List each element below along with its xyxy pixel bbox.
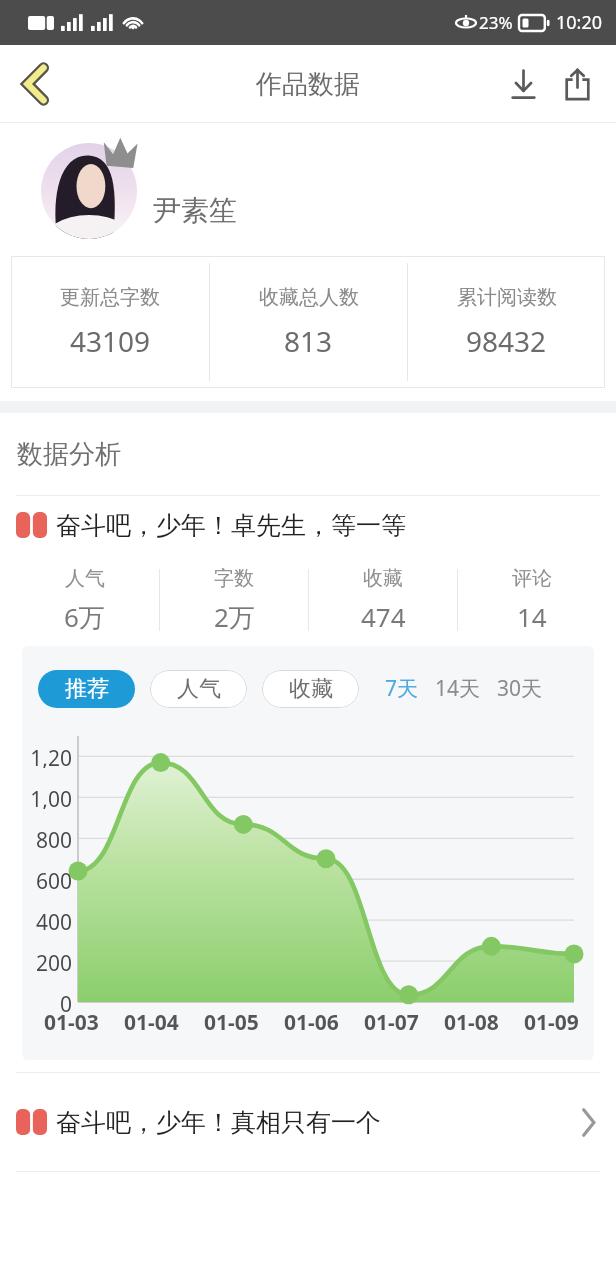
staticText: 数据分析 — [17, 438, 121, 471]
staticText: 01-09 — [524, 1008, 579, 1037]
staticText: 尹素笙 — [153, 193, 237, 228]
staticText: 1,200 — [22, 744, 72, 768]
staticText: 01-07 — [364, 1008, 419, 1037]
staticText: 作品数据 — [256, 68, 360, 101]
button[interactable]: 7天 — [381, 666, 423, 711]
staticText: 收藏 — [363, 566, 403, 591]
staticText: 813 — [284, 322, 333, 360]
staticText: 更新总字数 — [60, 285, 160, 310]
button[interactable]: 收藏总人数 — [210, 256, 407, 388]
button[interactable]: 人气 — [10, 566, 159, 635]
button[interactable]: 更新总字数 — [11, 256, 209, 388]
staticText: 23% — [479, 11, 513, 34]
staticText: 10:20 — [556, 10, 603, 35]
staticText: 7天 — [385, 674, 419, 703]
staticText: 人气 — [65, 566, 105, 591]
button[interactable]: 评论 — [458, 566, 606, 634]
staticText: 1,000 — [22, 785, 72, 809]
staticText: 累计阅读数 — [457, 285, 557, 310]
staticText: 200 — [35, 949, 72, 973]
staticText: 600 — [35, 867, 72, 891]
button[interactable]: Back — [0, 45, 70, 123]
staticText: 01-05 — [204, 1008, 259, 1037]
staticText: 800 — [35, 826, 72, 850]
staticText: 奋斗吧，少年！真相只有一个 — [56, 1107, 381, 1138]
staticText: 评论 — [512, 566, 552, 591]
staticText: 字数 — [214, 566, 254, 591]
button[interactable]: 收藏 — [262, 670, 359, 708]
button[interactable]: 累计阅读数 — [408, 256, 605, 388]
staticText: 6万 — [64, 599, 105, 635]
staticText: 奋斗吧，少年！卓先生，等一等 — [56, 510, 406, 541]
staticText: 14天 — [435, 674, 481, 703]
button[interactable]: 30天 — [493, 666, 547, 711]
button[interactable]: 奋斗吧，少年！真相只有一个 — [0, 1073, 616, 1171]
staticText: 2万 — [214, 599, 255, 635]
button[interactable]: 收藏 — [309, 566, 457, 634]
button[interactable]: 14天 — [431, 666, 485, 711]
button[interactable]: 奋斗吧，少年！卓先生，等一等 — [0, 496, 616, 554]
staticText: 01-03 — [44, 1008, 99, 1037]
staticText: 01-06 — [284, 1008, 339, 1037]
staticText: 收藏 — [289, 675, 333, 703]
staticText: 98432 — [466, 322, 547, 360]
staticText: 0 — [59, 990, 72, 1014]
button[interactable]: 字数 — [160, 566, 308, 635]
button[interactable]: 推荐 — [38, 670, 135, 708]
staticText: 14 — [517, 599, 547, 634]
staticText: 01-04 — [124, 1008, 179, 1037]
staticText: 400 — [35, 908, 72, 932]
staticText: 人气 — [177, 675, 221, 703]
button[interactable]: Share — [550, 49, 604, 119]
staticText: 474 — [361, 599, 406, 634]
staticText: 推荐 — [65, 675, 109, 703]
button[interactable]: 人气 — [150, 670, 247, 708]
staticText: 30天 — [497, 674, 543, 703]
staticText: 收藏总人数 — [259, 285, 359, 310]
button[interactable]: Download — [496, 49, 550, 119]
staticText: 43109 — [70, 322, 151, 360]
staticText: 01-08 — [444, 1008, 499, 1037]
